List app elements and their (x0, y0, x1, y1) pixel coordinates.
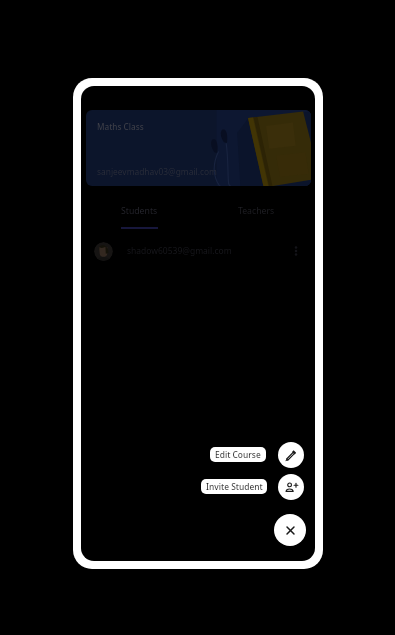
button[interactable]: Invite Student (278, 474, 304, 500)
button[interactable]: Invite Student (201, 479, 267, 494)
staticText: shadow60539@gmail.com (127, 245, 232, 257)
staticText: Invite Student (206, 481, 263, 492)
staticText: Maths Class (97, 121, 144, 132)
staticText: Teachers (238, 205, 275, 217)
button[interactable]: Students (81, 203, 198, 231)
button[interactable]: Edit Course (210, 447, 266, 462)
staticText: Students (121, 205, 158, 217)
button[interactable]: shadow60539@gmail.com (81, 238, 315, 264)
staticText: Edit Course (215, 449, 261, 460)
button[interactable]: More options (287, 242, 305, 260)
staticText: sanjeevmadhav03@gmail.com (97, 166, 217, 177)
button[interactable]: Teachers (198, 203, 315, 231)
button[interactable]: Close menu (274, 514, 306, 546)
button[interactable]: Edit Course (278, 442, 304, 468)
